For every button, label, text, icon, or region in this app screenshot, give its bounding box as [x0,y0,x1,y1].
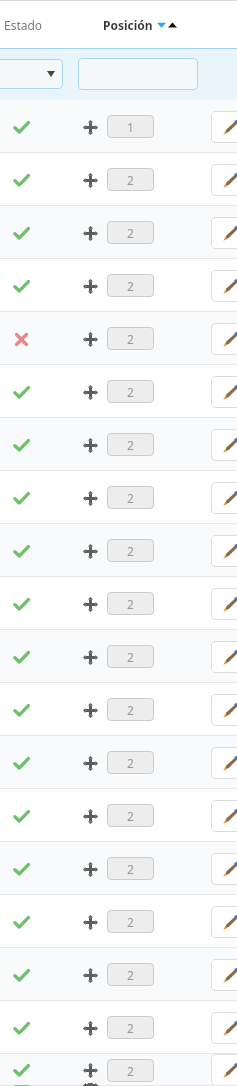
button[interactable]: 2 [107,274,154,297]
button[interactable]: Editar [211,535,237,567]
button[interactable]: Activo [9,804,33,828]
button[interactable]: Activo [9,486,33,510]
button[interactable]: Activo [9,751,33,775]
button[interactable]: Activo [0,471,237,524]
button[interactable]: 2 [107,433,154,456]
button[interactable]: Editar [211,1054,237,1086]
button[interactable]: Activo [9,592,33,616]
button[interactable]: Editar [211,164,237,196]
button[interactable]: Activo [9,274,33,298]
button[interactable]: 2 [107,910,154,933]
button[interactable]: Mover fila [79,964,101,986]
button[interactable]: Activo [0,259,237,312]
button[interactable]: Mover fila [79,540,101,562]
button[interactable]: Posición [103,17,177,33]
button[interactable]: Editar [211,482,237,514]
button[interactable]: Activo [0,789,237,842]
button[interactable]: Editar [211,694,237,726]
button[interactable]: 2 [107,221,154,244]
button[interactable]: 2 [107,1059,154,1082]
button[interactable]: Mover fila [79,752,101,774]
button[interactable]: Filtrar estado [0,59,63,89]
button[interactable]: Activo [0,418,237,471]
button[interactable]: Inactivo [9,327,33,351]
button[interactable]: Activo [0,1001,237,1054]
button[interactable]: Activo [9,698,33,722]
button[interactable]: 2 [107,857,154,880]
button[interactable]: Editar [211,111,237,143]
button[interactable]: Activo [9,1058,33,1082]
button[interactable]: Activo [9,433,33,457]
button[interactable]: Activo [0,206,237,259]
button[interactable]: Editar [211,376,237,408]
button[interactable]: Mover fila [79,699,101,721]
button[interactable]: Activo [0,365,237,418]
button[interactable]: Activo [9,963,33,987]
button[interactable]: Activo [9,910,33,934]
button[interactable]: Mover fila [79,275,101,297]
button[interactable]: 2 [107,698,154,721]
button[interactable]: Mover fila [79,487,101,509]
button[interactable]: Activo [9,857,33,881]
button[interactable]: Editar [211,641,237,673]
button[interactable]: Activo [0,100,237,153]
button[interactable]: Mover fila [79,646,101,668]
button[interactable]: Activo [9,115,33,139]
button[interactable]: Activo [9,1016,33,1040]
button[interactable]: Editar [211,270,237,302]
button[interactable]: Activo [0,736,237,789]
button[interactable]: Editar [211,1012,237,1044]
button[interactable]: Mover fila [79,805,101,827]
button[interactable]: Activo [9,645,33,669]
button[interactable]: Activo [9,539,33,563]
button[interactable]: 2 [107,380,154,403]
button[interactable]: Editar [211,800,237,832]
staticText: 2 [127,543,134,559]
button[interactable]: Mover fila [79,858,101,880]
button[interactable]: 2 [107,751,154,774]
button[interactable]: Mover fila [79,434,101,456]
button[interactable]: 2 [107,486,154,509]
button[interactable]: Mover fila [79,1059,101,1081]
button[interactable]: Inactivo [0,312,237,365]
button[interactable]: Editar [211,906,237,938]
button[interactable]: 2 [107,645,154,668]
button[interactable]: Activo [9,221,33,245]
button[interactable]: Editar [211,747,237,779]
button[interactable]: Mover fila [79,116,101,138]
button[interactable]: Editar [211,959,237,991]
button[interactable]: Filtrar posición [78,58,198,90]
button[interactable]: 2 [107,168,154,191]
button[interactable]: Activo [9,168,33,192]
button[interactable]: Activo [0,153,237,206]
button[interactable]: Activo [0,948,237,1001]
button[interactable]: Mover fila [79,222,101,244]
button[interactable]: 2 [107,592,154,615]
button[interactable]: Mover fila [79,1017,101,1039]
button[interactable]: 2 [107,327,154,350]
button[interactable]: Activo [0,895,237,948]
button[interactable]: Activo [0,630,237,683]
button[interactable]: Estado [4,17,43,33]
button[interactable]: 2 [107,539,154,562]
button[interactable]: 2 [107,804,154,827]
button[interactable]: 2 [107,1016,154,1039]
button[interactable]: Editar [211,588,237,620]
button[interactable]: Mover fila [79,169,101,191]
button[interactable]: Editar [211,853,237,885]
button[interactable]: Mover fila [79,593,101,615]
button[interactable]: Editar [211,217,237,249]
button[interactable]: Mover fila [79,911,101,933]
button[interactable]: Mover fila [79,381,101,403]
button[interactable]: 2 [107,963,154,986]
button[interactable]: Activo [0,842,237,895]
button[interactable]: Activo [0,1054,237,1086]
button[interactable]: Activo [0,683,237,736]
button[interactable]: 1 [107,115,154,138]
button[interactable]: Editar [211,323,237,355]
button[interactable]: Activo [0,577,237,630]
button[interactable]: Activo [0,524,237,577]
button[interactable]: Mover fila [79,328,101,350]
button[interactable]: Activo [9,380,33,404]
button[interactable]: Editar [211,429,237,461]
